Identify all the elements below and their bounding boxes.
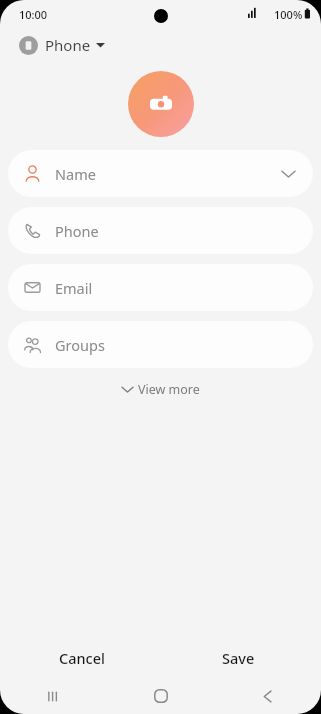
button[interactable]: Phone [8, 207, 313, 254]
staticText: Save [222, 648, 255, 668]
button[interactable]: Add photo [128, 71, 194, 137]
staticText: Cancel [59, 648, 105, 668]
button[interactable]: View more [112, 376, 210, 403]
staticText: 100% [274, 7, 303, 22]
staticText: View more [138, 381, 200, 398]
button[interactable]: Email [8, 264, 313, 311]
staticText: Email [55, 278, 93, 298]
button[interactable]: Recents [0, 678, 107, 714]
staticText: Groups [55, 335, 105, 355]
staticText: Phone [55, 221, 99, 241]
button[interactable]: Save [160, 640, 317, 676]
button[interactable]: Home [107, 678, 214, 714]
staticText: Phone [45, 35, 91, 55]
button[interactable]: Cancel [4, 640, 160, 676]
staticText: Name [55, 164, 96, 184]
button[interactable]: Name [8, 150, 313, 197]
button[interactable]: Back [214, 678, 321, 714]
button[interactable]: Groups [8, 321, 313, 368]
staticText: 10:00 [19, 7, 48, 22]
button[interactable]: Phone [17, 28, 107, 62]
